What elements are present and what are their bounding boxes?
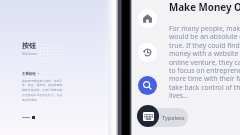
- staticText: 按钮用于触发某个操作，比如下单、提交、保存等。按钮需要明确表达其功能，让用户清楚…: [22, 79, 63, 102]
- staticText: lives...: [169, 91, 189, 100]
- button[interactable]: Typeless: [140, 108, 188, 127]
- staticText: money with a website or other: [169, 49, 240, 58]
- staticText: online venture, they can have time: [169, 58, 240, 67]
- staticText: would be an absolute dream come: [169, 32, 240, 41]
- staticText: more time with their families and: [169, 74, 240, 83]
- staticText: For many people, making money: [169, 24, 240, 33]
- button[interactable]: History: [138, 43, 157, 62]
- staticText: Typeless: [162, 114, 185, 122]
- button[interactable]: Home: [138, 9, 157, 28]
- button[interactable]: Keyboard: [137, 105, 159, 127]
- button[interactable]: Search: [138, 76, 157, 95]
- staticText: 按钮: [22, 41, 36, 50]
- staticText: Buttons: [22, 51, 38, 57]
- staticText: to focus on entrepreneurship, spend: [169, 66, 240, 75]
- staticText: take back control of their: [169, 83, 240, 92]
- staticText: true. If they could find a way to: [169, 41, 240, 50]
- staticText: 主要按钮: [22, 72, 36, 76]
- staticText: Make Money Online: [169, 1, 240, 14]
